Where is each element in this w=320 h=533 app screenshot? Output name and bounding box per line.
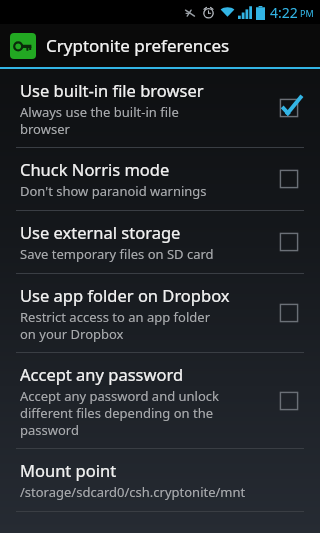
button[interactable]: Unchecked: [272, 384, 306, 418]
staticText: /storage/sdcard0/csh.cryptonite/mnt: [20, 483, 246, 501]
staticText: Save temporary files on SD card: [20, 245, 214, 263]
button[interactable]: Accept any password: [0, 353, 320, 448]
staticText: Restrict access to an app folder on your…: [20, 308, 211, 343]
staticText: Accept any password: [20, 363, 184, 385]
staticText: Cryptonite preferences: [46, 34, 230, 57]
staticText: 4:22: [270, 3, 298, 22]
staticText: Mount point: [20, 459, 117, 481]
staticText: Use external storage: [20, 221, 181, 243]
button[interactable]: Unchecked: [272, 162, 306, 196]
button[interactable]: Unchecked: [272, 296, 306, 330]
button[interactable]: Unchecked: [272, 225, 306, 259]
button[interactable]: Use app folder on Dropbox: [0, 274, 320, 352]
button[interactable]: Mount point: [0, 449, 320, 511]
button[interactable]: Checked: [272, 91, 306, 125]
button[interactable]: Use external storage: [0, 211, 320, 273]
staticText: Chuck Norris mode: [20, 158, 170, 180]
staticText: Accept any password and unlock different…: [20, 387, 220, 439]
button[interactable]: Use built-in file browser: [0, 69, 320, 147]
staticText: Don't show paranoid warnings: [20, 182, 207, 200]
button[interactable]: Chuck Norris mode: [0, 148, 320, 210]
staticText: PM: [300, 7, 314, 19]
staticText: Use app folder on Dropbox: [20, 284, 230, 306]
staticText: Use built-in file browser: [20, 79, 204, 101]
staticText: Always use the built-in file browser: [20, 103, 179, 138]
